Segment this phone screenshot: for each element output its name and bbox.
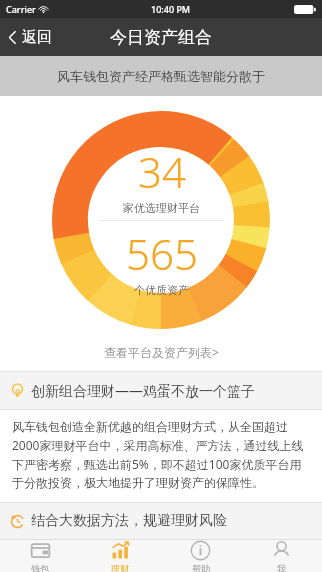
staticText: 返回: [22, 28, 52, 47]
staticText: 查看平台及资产列表>: [104, 344, 219, 360]
staticText: 2000家理财平台中，采用高标准、严方法，通过线上线: [12, 437, 304, 453]
staticText: 结合大数据方法，规避理财风险: [31, 512, 227, 530]
staticText: Carrier: [6, 3, 36, 15]
button[interactable]: 帮助: [160, 540, 241, 572]
button[interactable]: 理财: [80, 540, 160, 572]
button[interactable]: 结合大数据方法，规避理财风险: [0, 503, 322, 539]
staticText: 我: [277, 563, 286, 572]
staticText: 风车钱包资产经严格甄选智能分散于: [57, 68, 265, 84]
staticText: 创新组合理财——鸡蛋不放一个篮子: [31, 381, 255, 400]
button[interactable]: 创新组合理财——鸡蛋不放一个篮子: [0, 372, 322, 409]
staticText: 10:40 PM: [151, 3, 191, 15]
staticText: 今日资产组合: [110, 27, 212, 48]
staticText: 565: [126, 225, 198, 282]
staticText: 家优选理财平台: [123, 201, 200, 215]
staticText: 于分散投资，极大地提升了理财资产的保障性。: [12, 475, 264, 490]
staticText: 帮助: [192, 563, 210, 572]
staticText: 钱包: [31, 563, 49, 572]
button[interactable]: 返回: [0, 22, 62, 53]
staticText: 下严密考察，甄选出前5%，即不超过100家优质平台用: [12, 456, 302, 472]
button[interactable]: 我: [241, 540, 322, 572]
staticText: 风车钱包创造全新优越的组合理财方式，从全国超过: [12, 419, 288, 434]
staticText: 34: [138, 143, 186, 200]
button[interactable]: 查看平台及资产列表>: [0, 337, 322, 367]
staticText: 个优质资产: [134, 283, 189, 297]
button[interactable]: 钱包: [0, 540, 80, 572]
staticText: 理财: [111, 563, 129, 572]
